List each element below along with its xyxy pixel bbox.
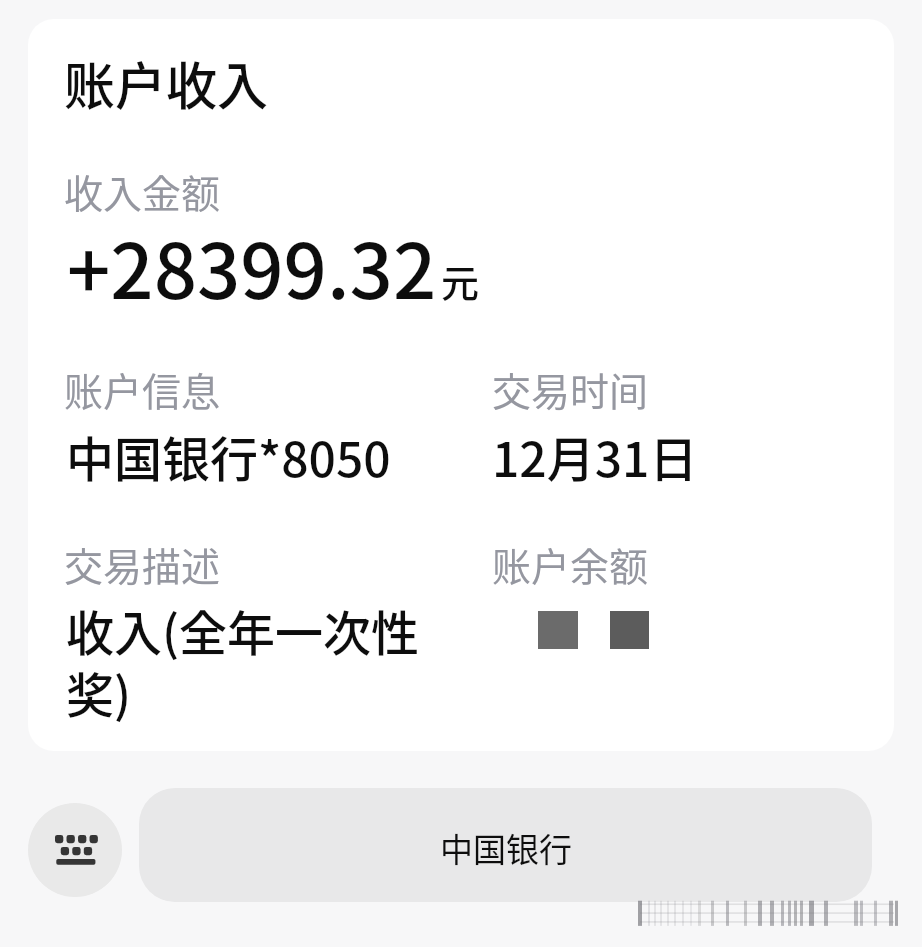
staticText: 中国银行*8050: [66, 421, 391, 491]
staticText: 收入(全年一次性奖): [66, 595, 466, 726]
staticText: 交易时间: [492, 361, 649, 417]
staticText: 账户余额: [492, 536, 649, 592]
staticText: 中国银行: [440, 824, 572, 872]
staticText: 账户收入: [64, 46, 269, 120]
staticText: 交易描述: [64, 536, 221, 592]
staticText: 元: [441, 253, 480, 308]
button[interactable]: 中国银行: [139, 788, 872, 902]
staticText: 12月31日: [492, 421, 698, 491]
staticText: 收入金额: [64, 163, 221, 219]
staticText: 账户信息: [64, 361, 221, 417]
button[interactable]: Keyboard: [28, 803, 122, 897]
staticText: +28399.32: [67, 211, 437, 321]
